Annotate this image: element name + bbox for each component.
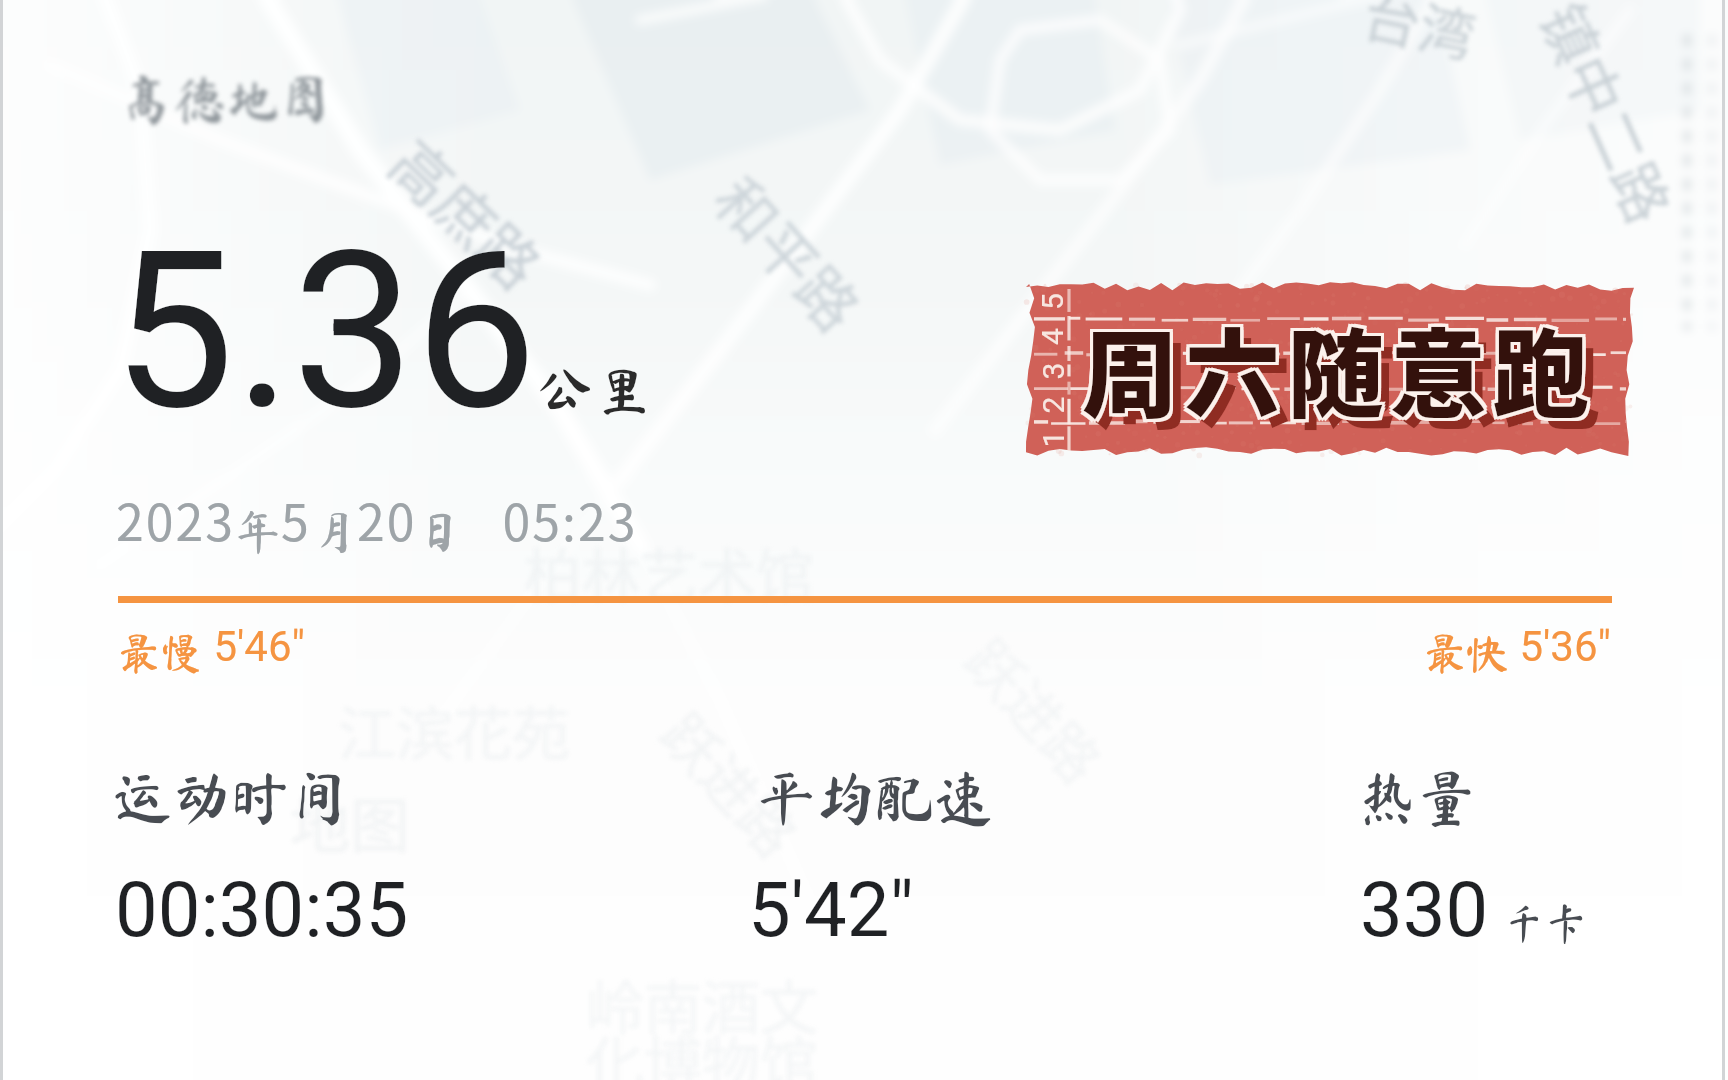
staticText: 台湾 (1357, 0, 1483, 74)
staticText: 05:23 (463, 483, 638, 555)
staticText: 跃进路 (950, 619, 1122, 798)
staticText: 平均配速 (757, 768, 994, 827)
staticText: 最快 (1424, 632, 1509, 674)
button[interactable]: 5.36 (112, 204, 655, 459)
staticText: 5'42" (748, 865, 914, 954)
button[interactable]: 平均配速 (700, 768, 1120, 916)
staticText: 月 (311, 509, 357, 555)
staticText: 2023 (116, 483, 235, 555)
staticText: 周六随意跑 (1085, 301, 1599, 440)
button[interactable]: 最慢 (116, 618, 308, 675)
staticText: 5.36 (112, 204, 538, 459)
staticText: 热量 (1358, 768, 1477, 827)
staticText: 3 (1035, 362, 1069, 379)
staticText: 5 (281, 483, 311, 555)
staticText: 柏林艺术馆 (524, 530, 815, 614)
staticText: 千卡 (1503, 902, 1588, 944)
staticText: 周六随意跑 (1085, 298, 1599, 437)
button[interactable]: 最快 (1422, 618, 1614, 675)
staticText: 和平路 (697, 155, 883, 347)
staticText: 周六随意跑 (1082, 298, 1596, 437)
staticText: 周六随意跑 (1082, 301, 1596, 440)
staticText: 5 (1035, 293, 1070, 310)
button[interactable]: 热量 (1290, 768, 1670, 916)
staticText: 周六随意跑 (1082, 295, 1596, 434)
staticText: 运动时间 (113, 768, 350, 827)
staticText: 1 (1035, 430, 1069, 447)
staticText: 公里 (536, 359, 653, 417)
button[interactable]: 运动时间 (90, 768, 610, 916)
button[interactable]: 周六随意跑 (1026, 284, 1634, 456)
staticText: 地图 (290, 778, 410, 865)
staticText: 镇中二路 (1523, 0, 1694, 235)
staticText: 周六随意跑 (1079, 295, 1593, 434)
staticText: 周六随意跑 (1085, 295, 1599, 434)
staticText: 330 (1360, 865, 1489, 954)
staticText: 高庶路 (373, 118, 563, 305)
staticText: 周六随意跑 (1079, 298, 1593, 437)
staticText: 年 (235, 509, 281, 555)
staticText: 周六随意跑 (1093, 309, 1607, 448)
staticText: 00:30:35 (115, 865, 409, 954)
staticText: 高德地图 (120, 72, 332, 125)
staticText: 周六随意跑 (1079, 301, 1593, 440)
staticText: 跃进路 (646, 693, 818, 872)
staticText: 4 (1035, 328, 1070, 345)
staticText: 最慢 (118, 632, 203, 674)
staticText: 5'36" (1509, 622, 1612, 671)
staticText: 2 (1035, 396, 1069, 413)
staticText: 5'46" (203, 622, 306, 671)
staticText: 日 (417, 509, 463, 555)
staticText: 20 (357, 483, 417, 555)
